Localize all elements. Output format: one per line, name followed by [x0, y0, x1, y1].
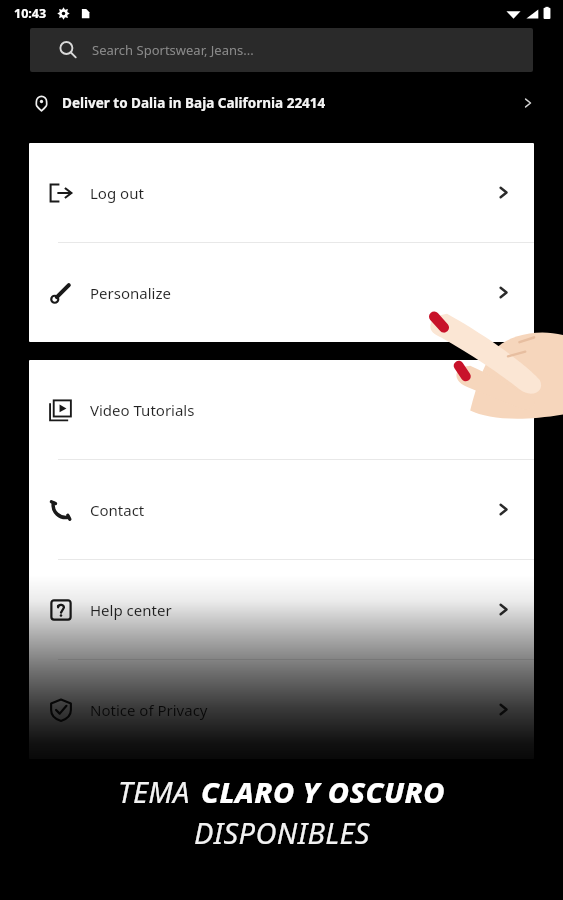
staticText: Search Sportswear, Jeans... — [92, 41, 254, 59]
staticText: DISPONIBLES — [194, 813, 370, 852]
other: Open Contact — [495, 501, 512, 518]
button[interactable]: Help center — [29, 560, 534, 659]
staticText: Deliver to Dalia in Baja California 2241… — [62, 94, 326, 112]
other: Open Help center — [495, 601, 512, 618]
other: Open Video Tutorials — [495, 401, 512, 418]
staticText: Personalize — [90, 283, 171, 303]
staticText: Contact — [90, 500, 145, 520]
other: Open Personalize — [495, 284, 512, 301]
button[interactable]: Log out — [29, 143, 534, 242]
staticText: Help center — [90, 600, 172, 620]
button[interactable]: Contact — [29, 460, 534, 559]
button[interactable]: Video Tutorials — [29, 360, 534, 459]
button[interactable]: Personalize — [29, 243, 534, 342]
other: Open Log out — [495, 184, 512, 201]
staticText: TEMA — [118, 772, 190, 811]
staticText: Log out — [90, 183, 144, 203]
staticText: Notice of Privacy — [90, 700, 208, 720]
staticText: Video Tutorials — [90, 400, 195, 420]
staticText: CLARO Y OSCURO — [201, 772, 445, 811]
other: Open Notice of Privacy — [495, 701, 512, 718]
staticText: 10:43 — [14, 5, 47, 22]
button[interactable]: Search Sportswear, Jeans... — [30, 28, 533, 72]
button[interactable]: Deliver to Dalia in Baja California 2241… — [0, 84, 563, 122]
button[interactable]: Notice of Privacy — [29, 660, 534, 759]
